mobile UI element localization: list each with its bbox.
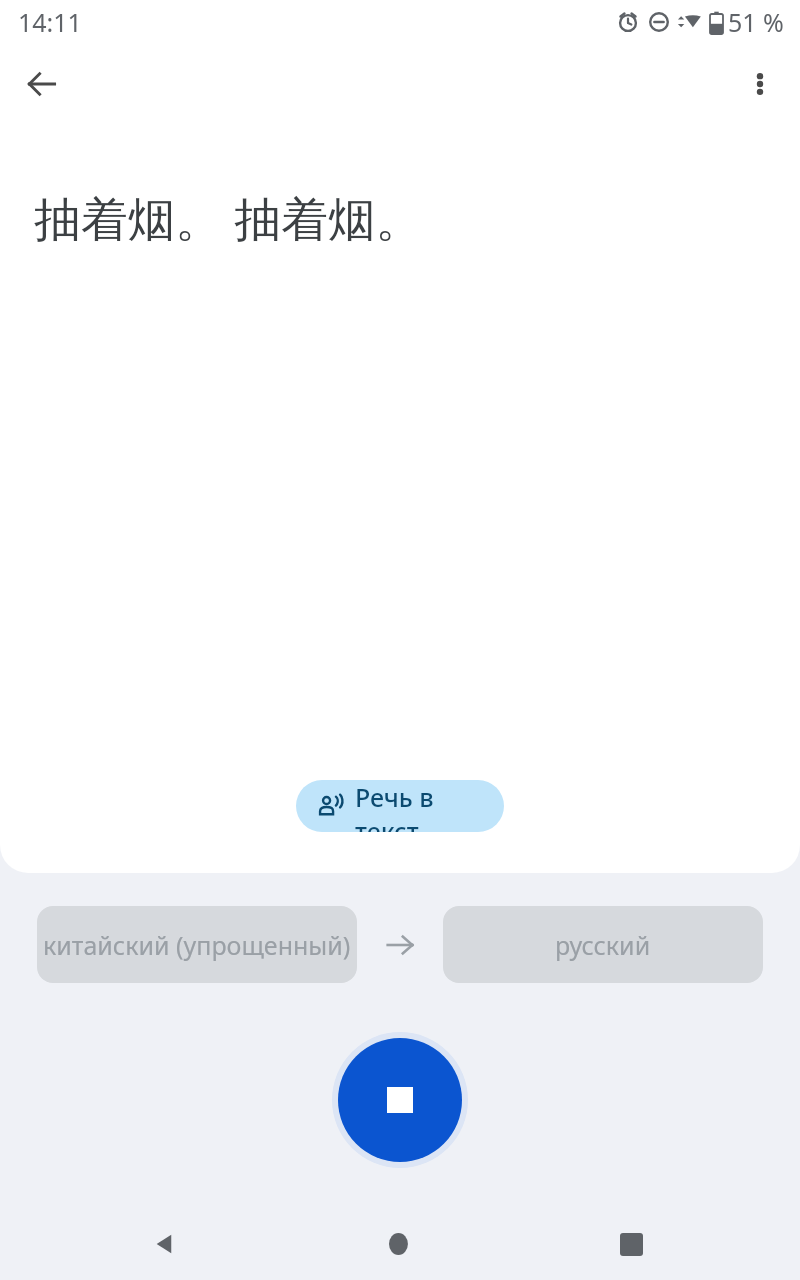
button[interactable]: китайский (упрощенный) <box>37 906 357 983</box>
staticText: русский <box>555 928 651 962</box>
button[interactable]: More options <box>728 52 792 116</box>
button[interactable]: Home <box>360 1208 440 1280</box>
staticText: 14:11 <box>18 5 82 39</box>
button[interactable]: Stop recording <box>332 1032 468 1168</box>
button[interactable]: Swap languages <box>357 906 443 983</box>
button[interactable]: Recent apps <box>591 1208 671 1280</box>
button[interactable]: Речь в текст <box>296 780 504 832</box>
button[interactable]: Back <box>10 52 74 116</box>
button[interactable]: русский <box>443 906 763 983</box>
staticText: 51 % <box>728 5 784 39</box>
button[interactable]: Back <box>125 1208 205 1280</box>
staticText: 抽着烟。 抽着烟。 <box>34 186 423 250</box>
staticText: Речь в текст <box>355 780 482 832</box>
staticText: китайский (упрощенный) <box>43 928 351 962</box>
